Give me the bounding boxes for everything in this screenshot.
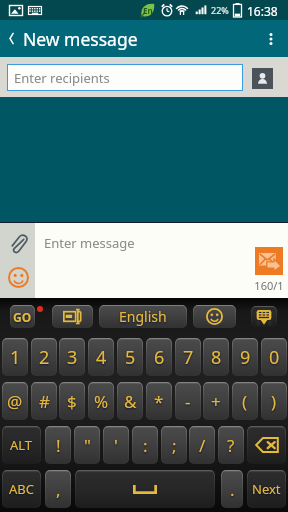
staticText: 5	[125, 345, 136, 370]
staticText: !	[56, 434, 61, 457]
staticText: &	[124, 390, 137, 413]
staticText: 160/1	[252, 278, 286, 293]
button[interactable]: 6	[146, 338, 172, 376]
button[interactable]: Send	[255, 247, 283, 275]
staticText: 6	[154, 345, 165, 370]
button[interactable]: "	[74, 426, 100, 464]
button[interactable]: More options	[254, 20, 288, 57]
button[interactable]: 9	[232, 338, 258, 376]
button[interactable]: *	[146, 382, 172, 420]
staticText: 7	[183, 345, 194, 370]
staticText: 1	[10, 345, 21, 370]
button[interactable]: +	[203, 382, 229, 420]
staticText: GO	[13, 309, 32, 325]
button[interactable]: &	[117, 382, 143, 420]
staticText: '	[114, 434, 118, 457]
button[interactable]: 0	[261, 338, 287, 376]
staticText: :	[143, 434, 148, 457]
staticText: .	[230, 478, 235, 501]
button[interactable]: 1	[2, 338, 28, 376]
button[interactable]: $	[59, 382, 85, 420]
button[interactable]: Emoticons	[193, 305, 236, 328]
staticText: +	[211, 390, 221, 413]
button[interactable]: ALT	[2, 426, 41, 464]
button[interactable]: Enter recipients	[7, 64, 243, 91]
staticText: 9	[240, 345, 251, 370]
button[interactable]: 8	[203, 338, 229, 376]
button[interactable]: ABC	[2, 470, 41, 508]
button[interactable]: @	[2, 382, 28, 420]
button[interactable]: Split keyboard	[52, 305, 93, 328]
button[interactable]: 2	[31, 338, 57, 376]
button[interactable]: .	[221, 470, 243, 508]
button[interactable]: Next	[247, 470, 286, 508]
staticText: ALT	[10, 436, 33, 454]
button[interactable]: ?	[218, 426, 244, 464]
button[interactable]: 4	[88, 338, 114, 376]
staticText: /	[199, 434, 206, 457]
staticText: Next	[252, 480, 281, 498]
staticText: 3	[67, 345, 78, 370]
staticText: 4	[96, 345, 107, 370]
staticText: 2	[39, 345, 50, 370]
staticText: (	[242, 390, 248, 413]
staticText: *	[154, 390, 164, 413]
staticText: "	[84, 434, 91, 457]
staticText: ABC	[9, 480, 34, 498]
button[interactable]: (	[232, 382, 258, 420]
staticText: %	[94, 390, 109, 413]
button[interactable]: Add recipient from contacts	[252, 68, 273, 89]
button[interactable]: ,	[45, 470, 71, 508]
button[interactable]: Attach	[8, 233, 28, 253]
staticText: 16:38	[247, 3, 278, 19]
staticText: $	[67, 390, 77, 413]
button[interactable]: English	[99, 305, 187, 328]
staticText: Enter message	[44, 234, 135, 252]
staticText: ,	[56, 478, 61, 501]
staticText: English	[119, 307, 167, 326]
button[interactable]: #	[31, 382, 57, 420]
button[interactable]: 3	[59, 338, 85, 376]
staticText: )	[271, 390, 277, 413]
button[interactable]: Go	[10, 305, 35, 328]
staticText: 8	[211, 345, 222, 370]
staticText: #	[39, 390, 50, 413]
button[interactable]: '	[103, 426, 129, 464]
button[interactable]: )	[261, 382, 287, 420]
staticText: ?	[227, 434, 235, 457]
button[interactable]: ;	[161, 426, 187, 464]
staticText: -	[185, 390, 191, 413]
staticText: 22%	[211, 4, 229, 16]
staticText: 0	[269, 345, 280, 370]
button[interactable]: /	[189, 426, 215, 464]
button[interactable]: %	[88, 382, 114, 420]
button[interactable]: Insert emoticon	[7, 266, 29, 288]
button[interactable]: 7	[175, 338, 201, 376]
staticText: @	[7, 390, 23, 413]
staticText: En	[143, 5, 153, 16]
button[interactable]: Hide keyboard	[251, 306, 277, 327]
staticText: ;	[172, 434, 177, 457]
staticText: New message	[23, 27, 138, 51]
button[interactable]: Navigate up	[0, 20, 23, 57]
button[interactable]: !	[45, 426, 71, 464]
staticText: Enter recipients	[14, 69, 110, 87]
button[interactable]: Space	[75, 470, 215, 508]
button[interactable]: Delete	[247, 426, 286, 464]
button[interactable]: -	[175, 382, 201, 420]
button[interactable]: :	[132, 426, 158, 464]
button[interactable]: 5	[117, 338, 143, 376]
